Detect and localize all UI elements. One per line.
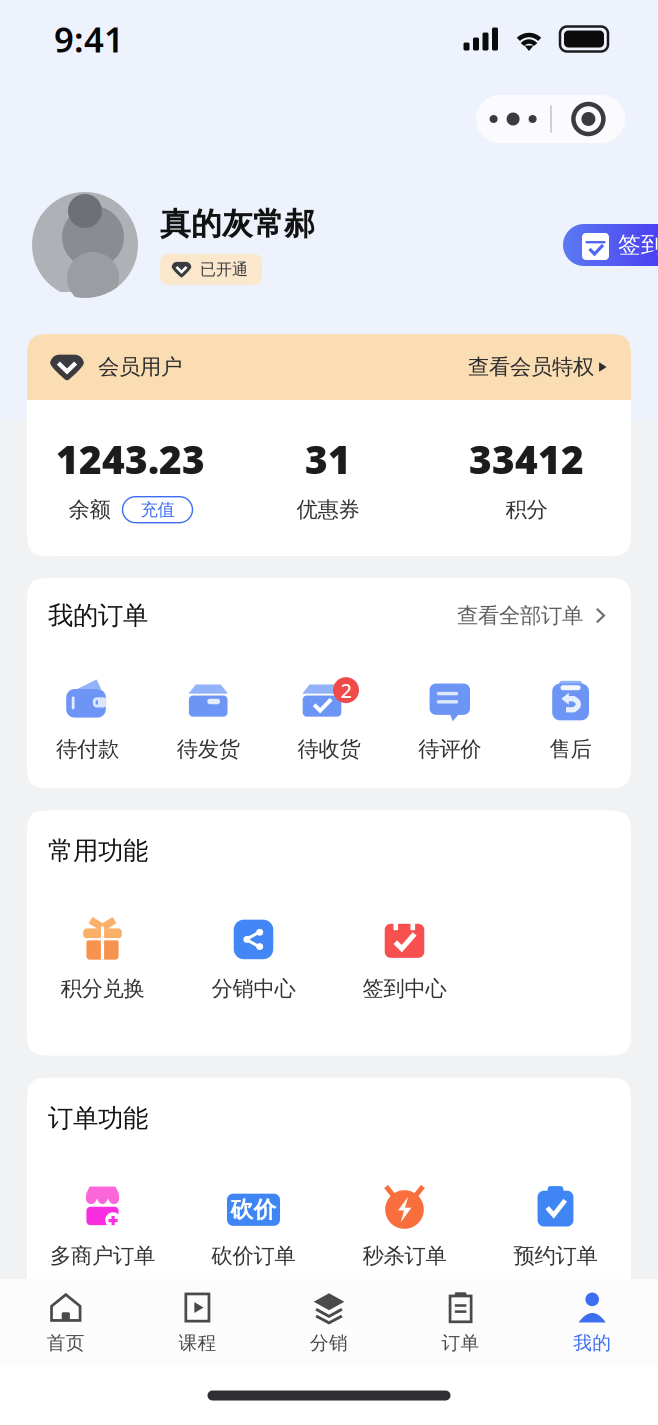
button[interactable]: 分销 xyxy=(263,1279,395,1366)
button[interactable]: 待发货 xyxy=(148,677,269,762)
staticText: 砍价 xyxy=(230,1196,276,1224)
button[interactable]: 会员用户 xyxy=(27,334,631,400)
staticText: 我的订单 xyxy=(48,600,148,631)
button[interactable]: 已开通 xyxy=(160,254,262,285)
button[interactable]: 订单 xyxy=(395,1279,526,1366)
button[interactable]: 2 xyxy=(269,677,389,762)
button[interactable]: 砍价 xyxy=(178,1184,329,1269)
staticText: 查看会员特权 xyxy=(468,354,594,380)
button[interactable]: 充值 xyxy=(122,497,192,523)
staticText: 会员用户 xyxy=(98,354,182,380)
staticText: 33412 xyxy=(469,433,584,485)
staticText: 首页 xyxy=(47,1331,85,1354)
staticText: 余额 xyxy=(68,497,110,523)
staticText: 分销 xyxy=(310,1331,348,1354)
button[interactable]: 预约订单 xyxy=(480,1184,631,1269)
staticText: 待评价 xyxy=(418,736,481,762)
staticText: 多商户订单 xyxy=(50,1243,155,1269)
staticText: 待付款 xyxy=(56,736,119,762)
staticText: 积分兑换 xyxy=(60,975,144,1002)
staticText: 预约订单 xyxy=(513,1243,597,1269)
staticText: 订单功能 xyxy=(48,1103,148,1134)
button[interactable]: Close xyxy=(552,95,625,143)
staticText: 秒杀订单 xyxy=(362,1243,446,1269)
button[interactable]: 多商户订单 xyxy=(27,1184,178,1269)
button[interactable]: 秒杀订单 xyxy=(329,1184,480,1269)
button[interactable]: More xyxy=(476,95,550,143)
staticText: 已开通 xyxy=(200,259,248,279)
staticText: 优惠券 xyxy=(296,497,359,523)
button[interactable]: 查看全部订单 xyxy=(457,602,610,629)
button[interactable]: 首页 xyxy=(0,1279,132,1366)
staticText: 售后 xyxy=(550,736,592,762)
staticText: 9:41 xyxy=(54,16,124,62)
staticText: 查看全部订单 xyxy=(457,602,583,629)
staticText: 充值 xyxy=(140,499,174,520)
staticText: 常用功能 xyxy=(48,835,148,866)
staticText: 分销中心 xyxy=(211,975,295,1002)
staticText: 课程 xyxy=(178,1331,216,1354)
staticText: 31 xyxy=(305,433,351,485)
staticText: 积分 xyxy=(505,497,547,523)
staticText: 签到中心 xyxy=(362,975,446,1002)
button[interactable]: 签到 xyxy=(563,224,658,266)
staticText: 我的 xyxy=(573,1331,611,1354)
button[interactable]: 分销中心 xyxy=(178,916,329,1002)
button[interactable]: 待评价 xyxy=(389,677,510,762)
staticText: 1243.23 xyxy=(56,433,205,484)
button[interactable]: 签到中心 xyxy=(329,916,480,1002)
button[interactable]: 积分兑换 xyxy=(27,916,178,1002)
button[interactable]: 课程 xyxy=(132,1279,263,1366)
staticText: 签到 xyxy=(618,231,658,259)
staticText: 订单 xyxy=(442,1331,480,1354)
staticText: 真的灰常郝 xyxy=(160,205,315,243)
button[interactable]: 我的 xyxy=(526,1279,658,1366)
button[interactable]: 待付款 xyxy=(27,677,148,762)
staticText: 砍价订单 xyxy=(211,1243,295,1269)
staticText: 待收货 xyxy=(297,736,360,762)
button[interactable]: 售后 xyxy=(510,677,631,762)
staticText: 待发货 xyxy=(177,736,240,762)
staticText: 2 xyxy=(340,677,351,703)
